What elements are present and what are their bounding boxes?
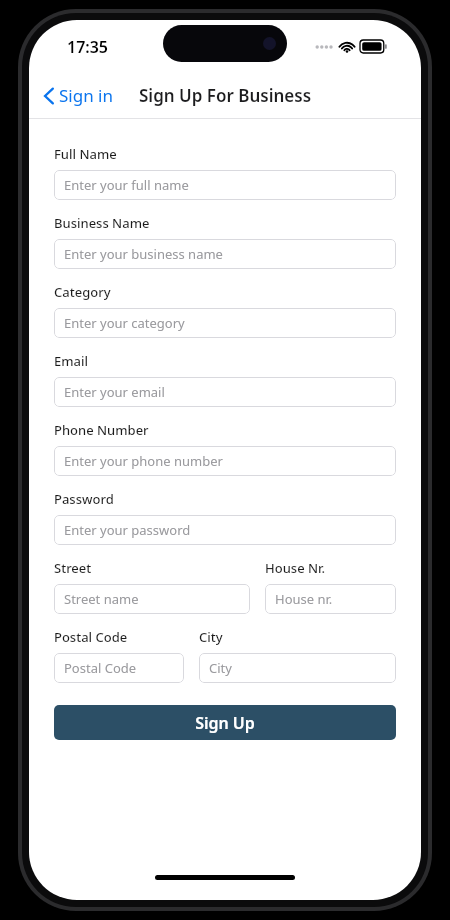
staticText: City — [199, 628, 223, 646]
staticText: 17:35 — [67, 36, 109, 58]
staticText: Street name — [64, 590, 139, 608]
button[interactable]: Enter your business name — [54, 239, 396, 269]
staticText: Postal Code — [54, 628, 128, 646]
staticText: House Nr. — [265, 559, 326, 577]
button[interactable]: Street name — [54, 584, 250, 614]
staticText: Enter your full name — [64, 176, 189, 194]
staticText: Business Name — [54, 214, 150, 232]
staticText: Category — [54, 283, 111, 301]
staticText: Phone Number — [54, 421, 149, 439]
button[interactable]: Enter your full name — [54, 170, 396, 200]
staticText: Street — [54, 559, 92, 577]
staticText: Enter your business name — [64, 245, 223, 263]
staticText: Enter your category — [64, 314, 185, 332]
staticText: Enter your email — [64, 383, 165, 401]
button[interactable]: House nr. — [265, 584, 396, 614]
button[interactable]: Enter your category — [54, 308, 396, 338]
staticText: Postal Code — [64, 659, 137, 677]
staticText: Sign in — [59, 84, 113, 107]
button[interactable]: Postal Code — [54, 653, 184, 683]
button[interactable]: Enter your email — [54, 377, 396, 407]
staticText: Password — [54, 490, 114, 508]
button[interactable]: Enter your phone number — [54, 446, 396, 476]
staticText: Enter your phone number — [64, 452, 223, 470]
button[interactable]: Sign Up — [54, 705, 396, 740]
staticText: House nr. — [275, 590, 333, 608]
button[interactable]: City — [199, 653, 396, 683]
staticText: Enter your password — [64, 521, 191, 539]
staticText: City — [209, 659, 232, 677]
staticText: Sign Up For Business — [139, 84, 312, 107]
button[interactable]: Enter your password — [54, 515, 396, 545]
staticText: Sign Up — [195, 712, 255, 734]
button[interactable]: Sign in — [37, 80, 119, 111]
staticText: Full Name — [54, 145, 117, 163]
staticText: Email — [54, 352, 89, 370]
